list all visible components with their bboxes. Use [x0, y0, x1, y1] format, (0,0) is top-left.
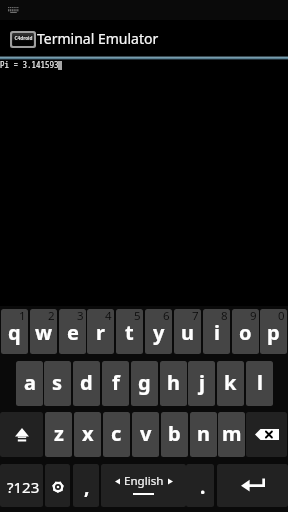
- staticText: f: [112, 369, 120, 396]
- button[interactable]: s: [44, 361, 71, 406]
- button[interactable]: ?123: [0, 464, 43, 507]
- staticText: p: [267, 319, 280, 346]
- button[interactable]: h: [160, 361, 187, 406]
- staticText: c: [111, 420, 122, 447]
- button[interactable]: c: [103, 412, 130, 457]
- staticText: ,: [84, 474, 90, 500]
- staticText: 8: [221, 309, 228, 324]
- button[interactable]: 9: [232, 309, 259, 354]
- button[interactable]: z: [45, 412, 72, 457]
- button[interactable]: 5: [116, 309, 143, 354]
- staticText: d: [80, 369, 93, 396]
- staticText: l: [257, 369, 263, 396]
- staticText: o: [239, 319, 252, 346]
- button[interactable]: 3: [59, 309, 86, 354]
- staticText: 4: [105, 309, 112, 324]
- button[interactable]: j: [188, 361, 215, 406]
- button[interactable]: f: [102, 361, 129, 406]
- staticText: r: [96, 319, 105, 346]
- staticText: m: [222, 420, 242, 447]
- button[interactable]: v: [132, 412, 159, 457]
- staticText: t: [125, 319, 134, 346]
- button[interactable]: b: [161, 412, 188, 457]
- staticText: i: [214, 319, 220, 346]
- staticText: Terminal Emulator: [37, 29, 159, 48]
- staticText: 0: [278, 309, 285, 324]
- staticText: s: [52, 369, 63, 396]
- staticText: 1: [19, 309, 26, 324]
- button[interactable]: n: [190, 412, 217, 457]
- staticText: e: [67, 319, 79, 346]
- staticText: b: [168, 420, 181, 447]
- staticText: 3: [77, 309, 84, 324]
- staticText: 2: [48, 309, 55, 324]
- staticText: n: [197, 420, 210, 447]
- button[interactable]: .: [186, 464, 214, 507]
- staticText: j: [199, 369, 205, 396]
- staticText: 7: [192, 309, 199, 324]
- staticText: g: [138, 369, 151, 396]
- staticText: .: [200, 474, 206, 500]
- button[interactable]: Backspace: [246, 412, 287, 457]
- button[interactable]: Space: [101, 464, 186, 507]
- staticText: z: [54, 420, 64, 447]
- button[interactable]: 0: [260, 309, 287, 354]
- staticText: x: [82, 420, 94, 447]
- staticText: v: [140, 420, 152, 447]
- button[interactable]: m: [218, 412, 245, 457]
- staticText: h: [167, 369, 180, 396]
- button[interactable]: g: [131, 361, 158, 406]
- button[interactable]: 8: [203, 309, 230, 354]
- staticText: 9: [250, 309, 257, 324]
- button[interactable]: 6: [145, 309, 172, 354]
- button[interactable]: ,: [73, 464, 99, 507]
- staticText: 5: [134, 309, 141, 324]
- button[interactable]: Shift: [0, 412, 43, 457]
- staticText: y: [153, 319, 165, 346]
- button[interactable]: 2: [30, 309, 57, 354]
- button[interactable]: Enter: [217, 464, 288, 507]
- staticText: u: [181, 319, 194, 346]
- staticText: a: [24, 369, 36, 396]
- button[interactable]: l: [246, 361, 273, 406]
- staticText: 6: [163, 309, 170, 324]
- button[interactable]: 1: [1, 309, 28, 354]
- staticText: Pi = 3.141593: [0, 58, 59, 71]
- button[interactable]: x: [74, 412, 101, 457]
- staticText: ?123: [7, 477, 40, 497]
- staticText: English: [124, 473, 164, 489]
- staticText: k: [224, 369, 237, 396]
- button[interactable]: d: [73, 361, 100, 406]
- staticText: w: [35, 319, 53, 346]
- staticText: C4droid: [14, 35, 32, 41]
- button[interactable]: Settings: [45, 464, 70, 507]
- staticText: q: [8, 319, 21, 346]
- button[interactable]: a: [16, 361, 43, 406]
- button[interactable]: 7: [174, 309, 201, 354]
- button[interactable]: 4: [87, 309, 114, 354]
- button[interactable]: k: [217, 361, 244, 406]
